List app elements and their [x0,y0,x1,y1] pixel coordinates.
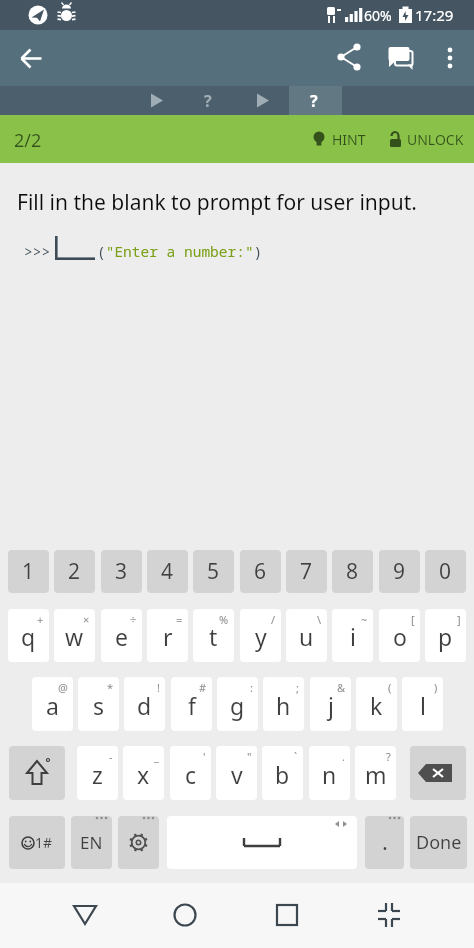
button[interactable]: 5 [193,550,234,593]
staticText: 5 [207,557,220,586]
staticText: Done [416,830,462,855]
button[interactable]: 4 [147,550,188,593]
button[interactable]: z [77,746,118,800]
staticText: a [46,690,59,721]
button[interactable]: c [170,746,211,800]
button[interactable]: 6 [240,550,281,593]
staticText: + [37,612,44,627]
staticText: >>> [24,241,51,261]
staticText: 1# [35,833,53,852]
button[interactable]: UNLOCK [387,126,464,152]
button[interactable] [10,37,52,79]
staticText: ? [386,749,391,764]
button[interactable] [167,816,357,869]
staticText: d [137,690,152,721]
button[interactable]: 3 [101,550,142,593]
staticText: . [342,749,345,764]
staticText: HINT [332,130,366,149]
button[interactable] [118,816,159,869]
button[interactable]: x [123,746,164,800]
button[interactable]: Done [410,816,467,869]
staticText: x [137,759,150,790]
button[interactable]: a [32,677,73,731]
staticText: % [219,612,229,627]
button[interactable] [330,37,370,77]
staticText: 2/2 [14,128,42,153]
button[interactable]: k [356,677,397,731]
staticText: h [276,690,291,721]
staticText: EN [80,831,103,854]
staticText: o [393,621,407,652]
staticText: e [115,621,128,652]
button[interactable]: o [379,609,420,662]
staticText: = [176,612,183,627]
button[interactable]: 2 [54,550,95,593]
button[interactable]: t [193,609,234,662]
button[interactable]: q [8,609,49,662]
button[interactable]: v [216,746,257,800]
button[interactable]: m [355,746,396,800]
staticText: ` [294,749,298,764]
button[interactable] [432,37,472,77]
staticText: t [209,621,218,652]
button[interactable]: n [309,746,350,800]
button[interactable]: 1# [9,816,65,869]
button[interactable]: g [217,677,258,731]
staticText: 9 [393,557,406,586]
button[interactable] [382,37,422,77]
button[interactable]: j [310,677,351,731]
button[interactable] [9,746,65,800]
button[interactable] [410,746,466,800]
button[interactable] [61,891,109,939]
button[interactable] [183,86,236,115]
button[interactable] [161,891,209,939]
staticText: & [337,680,346,695]
button[interactable]: i [332,609,373,662]
button[interactable]: . [365,816,404,869]
button[interactable]: 7 [286,550,327,593]
staticText: ÷ [130,612,137,627]
staticText: m [365,759,387,790]
button[interactable] [289,86,342,115]
staticText: × [83,612,90,627]
staticText: UNLOCK [407,130,464,149]
button[interactable] [130,86,183,115]
staticText: Fill in the blank to prompt for user inp… [17,188,417,217]
button[interactable]: l [402,677,443,731]
staticText: v [231,759,243,790]
button[interactable]: e [101,609,142,662]
staticText: 2 [68,557,81,586]
staticText: z [92,759,103,790]
button[interactable]: b [262,746,303,800]
button[interactable]: EN [71,816,112,869]
button[interactable] [263,891,311,939]
button[interactable]: 0 [425,550,466,593]
staticText: ( [388,680,392,695]
button[interactable]: p [425,609,466,662]
button[interactable]: 9 [379,550,420,593]
button[interactable] [236,86,289,115]
staticText: w [65,621,84,652]
staticText: l [420,690,426,721]
staticText: 0 [439,557,452,586]
staticText: / [271,612,276,627]
button[interactable] [365,891,413,939]
button[interactable]: f [171,677,212,731]
button[interactable]: w [54,609,95,662]
button[interactable]: h [263,677,304,731]
button[interactable]: HINT [310,126,366,152]
staticText: ) [434,680,438,695]
button[interactable]: y [240,609,281,662]
button[interactable]: s [78,677,119,731]
button[interactable]: d [124,677,165,731]
staticText: @ [58,680,68,695]
staticText: g [230,690,245,721]
button[interactable]: 8 [332,550,373,593]
button[interactable]: r [147,609,188,662]
button[interactable]: 1 [8,550,49,593]
staticText: k [370,690,383,721]
staticText: f [188,690,196,721]
staticText: 17:29 [415,5,454,25]
staticText: i [350,621,356,652]
button[interactable]: u [286,609,327,662]
